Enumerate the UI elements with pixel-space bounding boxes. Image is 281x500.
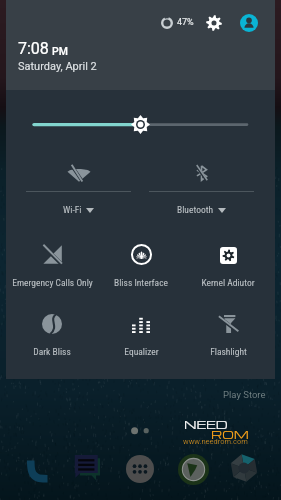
staticText: PM <box>52 45 68 57</box>
staticText: ROM <box>211 426 249 442</box>
button[interactable]: Camera <box>228 452 260 484</box>
button[interactable]: Bluetooth <box>149 158 254 216</box>
staticText: 7:08 <box>18 39 49 58</box>
button[interactable]: Equalizer <box>95 309 187 353</box>
staticText: www.needrom.com <box>183 437 248 446</box>
button[interactable]: Settings <box>206 15 222 31</box>
button[interactable]: Bliss Interface <box>95 238 187 282</box>
button[interactable]: Wi-Fi <box>26 158 131 216</box>
button[interactable]: Emergency Calls Only <box>6 239 98 283</box>
button[interactable]: All apps <box>126 455 154 483</box>
staticText: Emergency Calls Only <box>12 277 93 288</box>
button[interactable]: Dark Bliss <box>6 308 98 352</box>
button[interactable]: Messaging <box>72 454 100 481</box>
staticText: Wi-Fi <box>63 204 82 215</box>
button[interactable]: Browser <box>178 454 209 485</box>
button[interactable]: Play Store <box>223 389 266 400</box>
button[interactable]: Flashlight <box>182 309 274 353</box>
staticText: Dark Bliss <box>33 346 71 357</box>
staticText: Kernel Adiutor <box>201 277 255 288</box>
button[interactable]: Kernel Adiutor <box>182 241 274 285</box>
staticText: Flashlight <box>210 346 247 357</box>
staticText: 47% <box>177 17 194 28</box>
button[interactable]: Brightness <box>131 115 150 134</box>
staticText: Saturday, April 2 <box>18 60 97 73</box>
button[interactable]: Switch user <box>240 14 258 32</box>
staticText: Bluetooth <box>177 204 214 215</box>
staticText: Play Store <box>223 389 266 400</box>
staticText: NEED <box>184 416 228 432</box>
staticText: Bliss Interface <box>114 277 168 288</box>
button[interactable]: Phone <box>22 457 51 484</box>
staticText: Equalizer <box>124 346 159 357</box>
